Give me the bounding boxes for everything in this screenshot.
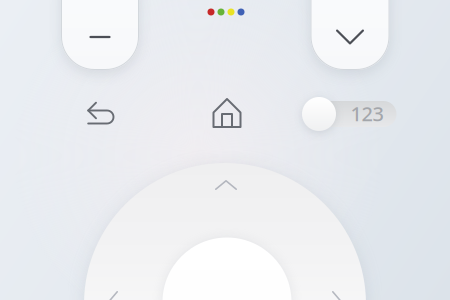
button[interactable]: Yellow bbox=[226, 7, 236, 17]
button[interactable]: Back bbox=[82, 96, 120, 129]
button[interactable]: Blue bbox=[236, 7, 246, 17]
button[interactable]: Volume down bbox=[61, 0, 139, 70]
button[interactable]: Home bbox=[207, 92, 246, 133]
button[interactable]: Number pad bbox=[300, 95, 400, 133]
button[interactable]: Directional pad bbox=[84, 163, 366, 300]
button[interactable]: Channel down bbox=[310, 0, 389, 70]
button[interactable]: Green bbox=[216, 7, 226, 17]
button[interactable]: Select bbox=[162, 237, 291, 300]
button[interactable]: Red bbox=[206, 7, 216, 17]
staticText: 123 bbox=[350, 100, 383, 127]
